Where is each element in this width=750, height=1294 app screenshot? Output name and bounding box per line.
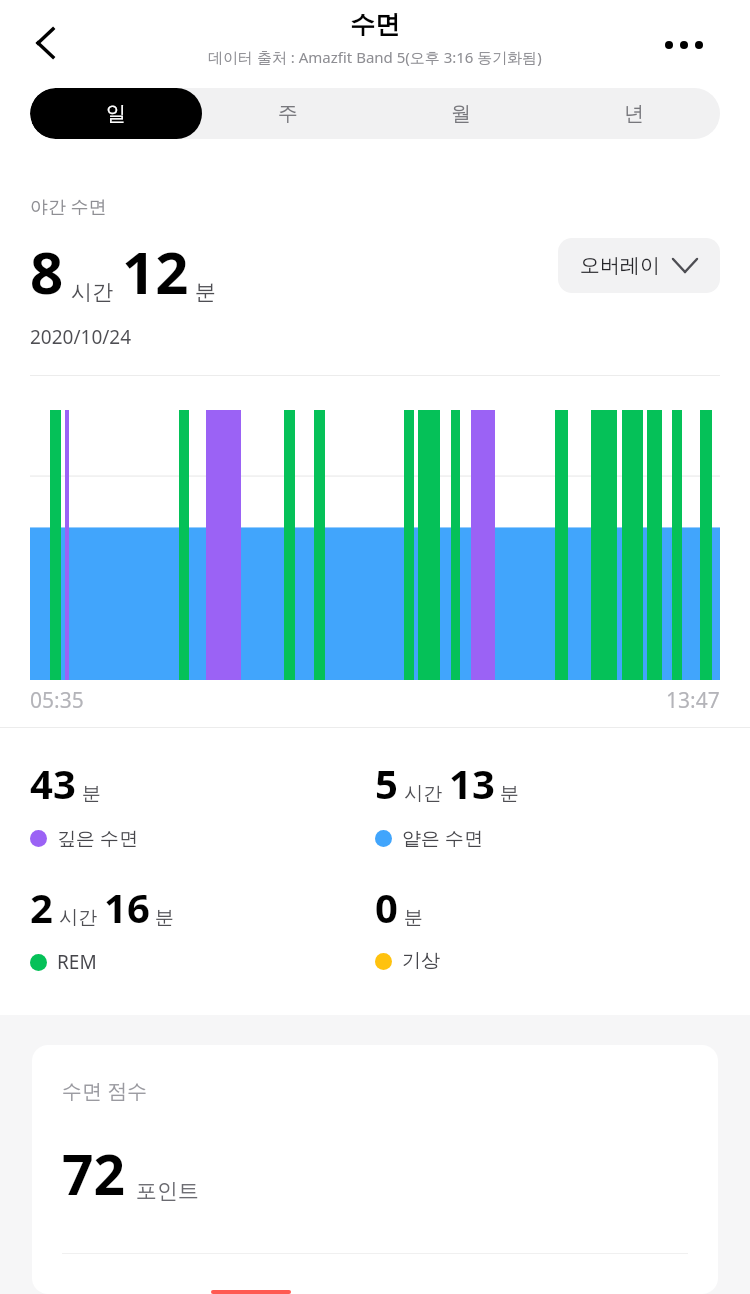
- staticText: REM: [57, 949, 97, 975]
- staticText: 시간: [71, 279, 113, 305]
- staticText: 5: [375, 756, 398, 810]
- staticText: 분: [82, 782, 101, 806]
- staticText: 주: [278, 101, 298, 126]
- staticText: 16: [104, 880, 150, 934]
- staticText: 12: [122, 232, 189, 311]
- staticText: 43: [30, 756, 76, 810]
- staticText: 0: [375, 880, 398, 934]
- staticText: 수면 점수: [62, 1077, 148, 1104]
- staticText: 일: [106, 101, 126, 126]
- button[interactable]: 오버레이: [558, 238, 720, 293]
- staticText: 2020/10/24: [30, 324, 132, 350]
- button[interactable]: 월: [374, 88, 547, 139]
- staticText: 년: [624, 101, 644, 126]
- staticText: 얕은 수면: [402, 825, 483, 851]
- staticText: 8: [30, 232, 64, 311]
- staticText: 데이터 출처 : Amazfit Band 5(오후 3:16 동기화됨): [208, 47, 542, 67]
- staticText: 72: [62, 1136, 125, 1211]
- staticText: 13: [449, 756, 495, 810]
- button[interactable]: 주: [202, 88, 374, 139]
- staticText: 분: [404, 906, 423, 930]
- staticText: 시간: [404, 782, 442, 806]
- staticText: 2: [30, 880, 53, 934]
- staticText: 깊은 수면: [57, 825, 138, 851]
- staticText: 오버레이: [580, 253, 660, 278]
- staticText: 분: [500, 782, 519, 806]
- staticText: 13:47: [666, 686, 720, 715]
- staticText: 05:35: [30, 686, 84, 715]
- button[interactable]: 수면 점수: [32, 1045, 718, 1294]
- staticText: 기상: [402, 949, 440, 973]
- staticText: 분: [195, 279, 216, 305]
- staticText: 야간 수면: [30, 194, 107, 219]
- button[interactable]: 일: [30, 88, 202, 139]
- staticText: 포인트: [136, 1178, 199, 1204]
- staticText: 분: [155, 906, 174, 930]
- staticText: 시간: [59, 906, 97, 930]
- staticText: 수면: [350, 9, 400, 40]
- staticText: 월: [451, 101, 471, 126]
- button[interactable]: 년: [547, 88, 720, 139]
- button[interactable]: More options: [648, 20, 720, 70]
- button[interactable]: Back: [16, 14, 74, 72]
